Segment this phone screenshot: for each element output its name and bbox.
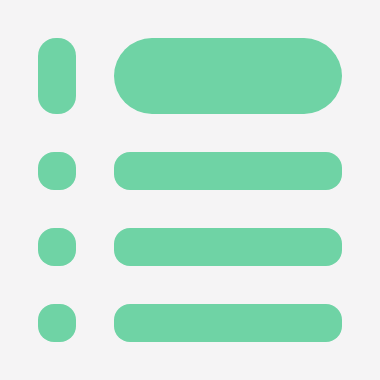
button[interactable]: List item 3 (38, 228, 342, 266)
button[interactable]: List item 2 (38, 152, 342, 190)
button[interactable]: List item 4 (38, 304, 342, 342)
button[interactable]: List item 1 (38, 38, 342, 114)
